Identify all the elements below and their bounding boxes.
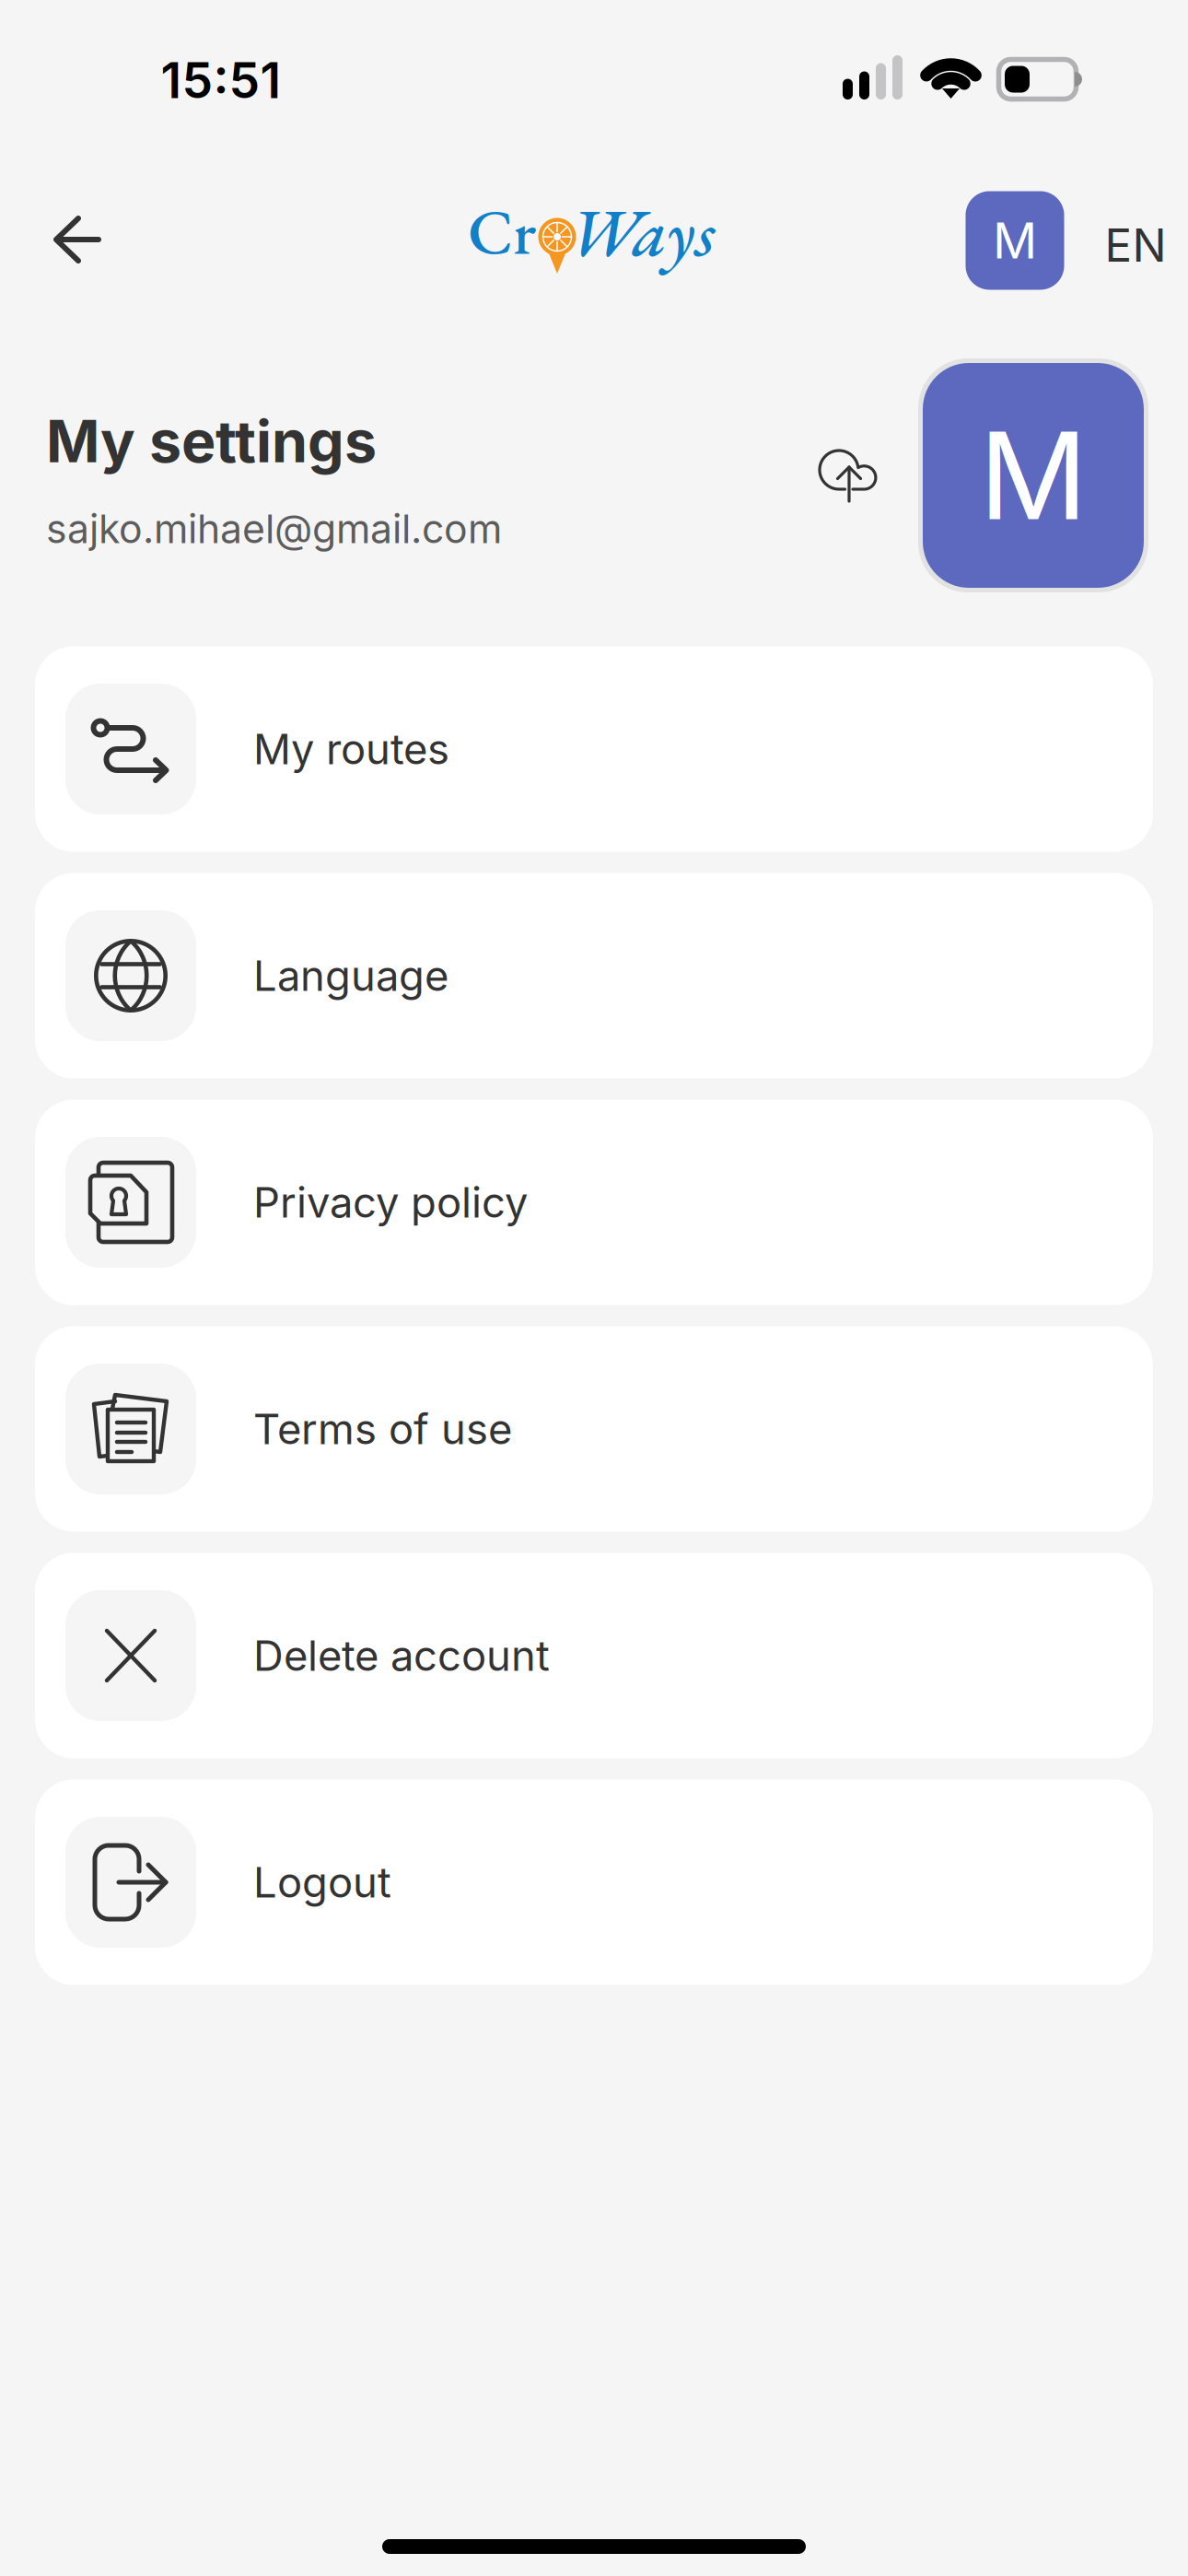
button[interactable]: Delete account xyxy=(35,1553,1153,1758)
staticText: Logout xyxy=(253,1857,391,1908)
button[interactable]: Profile photo xyxy=(918,358,1148,592)
button[interactable]: My routes xyxy=(35,646,1153,852)
staticText: Cr xyxy=(468,190,536,273)
button[interactable]: EN xyxy=(1099,213,1172,277)
button[interactable]: Terms of use xyxy=(35,1326,1153,1532)
button[interactable]: Privacy policy xyxy=(35,1100,1153,1305)
staticText: sajko.mihael@gmail.com xyxy=(46,505,502,553)
button[interactable]: Upload photo xyxy=(818,449,880,502)
staticText: M xyxy=(979,403,1088,548)
staticText: Privacy policy xyxy=(253,1177,528,1228)
staticText: My settings xyxy=(46,406,377,476)
staticText: Ways xyxy=(569,188,715,276)
button[interactable]: Logout xyxy=(35,1780,1153,1985)
button[interactable]: Language xyxy=(35,873,1153,1078)
staticText: EN xyxy=(1105,218,1166,273)
staticText: 15:51 xyxy=(161,50,281,110)
staticText: Language xyxy=(253,950,448,1001)
staticText: M xyxy=(993,211,1037,270)
staticText: Terms of use xyxy=(253,1404,512,1454)
staticText: Delete account xyxy=(253,1630,550,1681)
button[interactable]: Account xyxy=(966,191,1064,290)
staticText: My routes xyxy=(253,724,449,774)
button[interactable]: Back xyxy=(29,192,125,287)
